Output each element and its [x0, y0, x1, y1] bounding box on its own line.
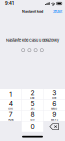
button[interactable]: 4 — [0, 100, 21, 110]
staticText: 5 — [30, 100, 34, 108]
staticText: 7 — [9, 110, 13, 118]
button[interactable]: 3 — [44, 89, 65, 99]
button[interactable]: 2 — [22, 89, 43, 99]
staticText: TUV — [30, 118, 35, 121]
staticText: 4 — [9, 100, 13, 108]
staticText: MNO — [51, 108, 57, 110]
staticText: JKL — [30, 108, 34, 110]
staticText: Zrušit — [53, 9, 62, 14]
button[interactable]: 6 — [44, 100, 65, 110]
staticText: DEF — [52, 97, 56, 100]
button[interactable]: 7 — [0, 111, 21, 121]
staticText: WXYZ — [51, 118, 58, 121]
staticText: Nastavte kód Času u obrazovky — [6, 38, 59, 43]
staticText: 3 — [52, 89, 56, 97]
staticText: 9:41 — [5, 1, 14, 6]
staticText: 0 — [30, 123, 34, 131]
button[interactable]: 9 — [44, 111, 65, 121]
staticText: 6 — [52, 100, 56, 108]
button[interactable]: 1 — [0, 89, 21, 99]
staticText: 8 — [30, 110, 34, 118]
staticText: 2 — [30, 89, 34, 97]
staticText: 1 — [9, 90, 12, 98]
staticText: 9 — [52, 110, 56, 118]
button[interactable]: Zrušit — [52, 9, 63, 14]
button[interactable]: 0 — [22, 121, 43, 132]
button[interactable]: Delete — [44, 121, 65, 132]
button[interactable]: 8 — [22, 111, 43, 121]
button[interactable]: 5 — [22, 100, 43, 110]
staticText: GHI — [8, 108, 13, 110]
staticText: ABC — [30, 97, 35, 100]
staticText: Nastavit kód — [22, 9, 43, 14]
staticText: PQRS — [8, 118, 13, 121]
